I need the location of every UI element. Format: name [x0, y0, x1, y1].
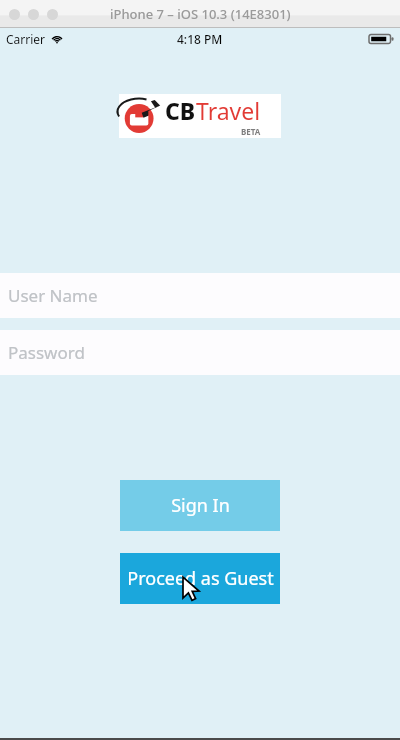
button[interactable]: Password: [0, 330, 400, 375]
staticText: Proceed as Guest: [127, 566, 274, 591]
button[interactable]: Minimize: [28, 9, 39, 20]
staticText: 4:18 PM: [177, 31, 223, 47]
staticText: User Name: [8, 284, 98, 307]
button[interactable]: Zoom: [47, 9, 58, 20]
button[interactable]: User Name: [0, 273, 400, 318]
staticText: Sign In: [171, 493, 230, 518]
staticText: Password: [8, 341, 85, 364]
button[interactable]: Close: [9, 9, 20, 20]
staticText: CB: [165, 95, 196, 126]
staticText: iPhone 7 – iOS 10.3 (14E8301): [110, 5, 291, 23]
button[interactable]: Sign In: [120, 480, 280, 531]
staticText: BETA: [241, 126, 261, 137]
button[interactable]: Proceed as Guest: [120, 553, 280, 604]
staticText: Carrier: [6, 31, 46, 47]
staticText: Travel: [196, 95, 261, 126]
